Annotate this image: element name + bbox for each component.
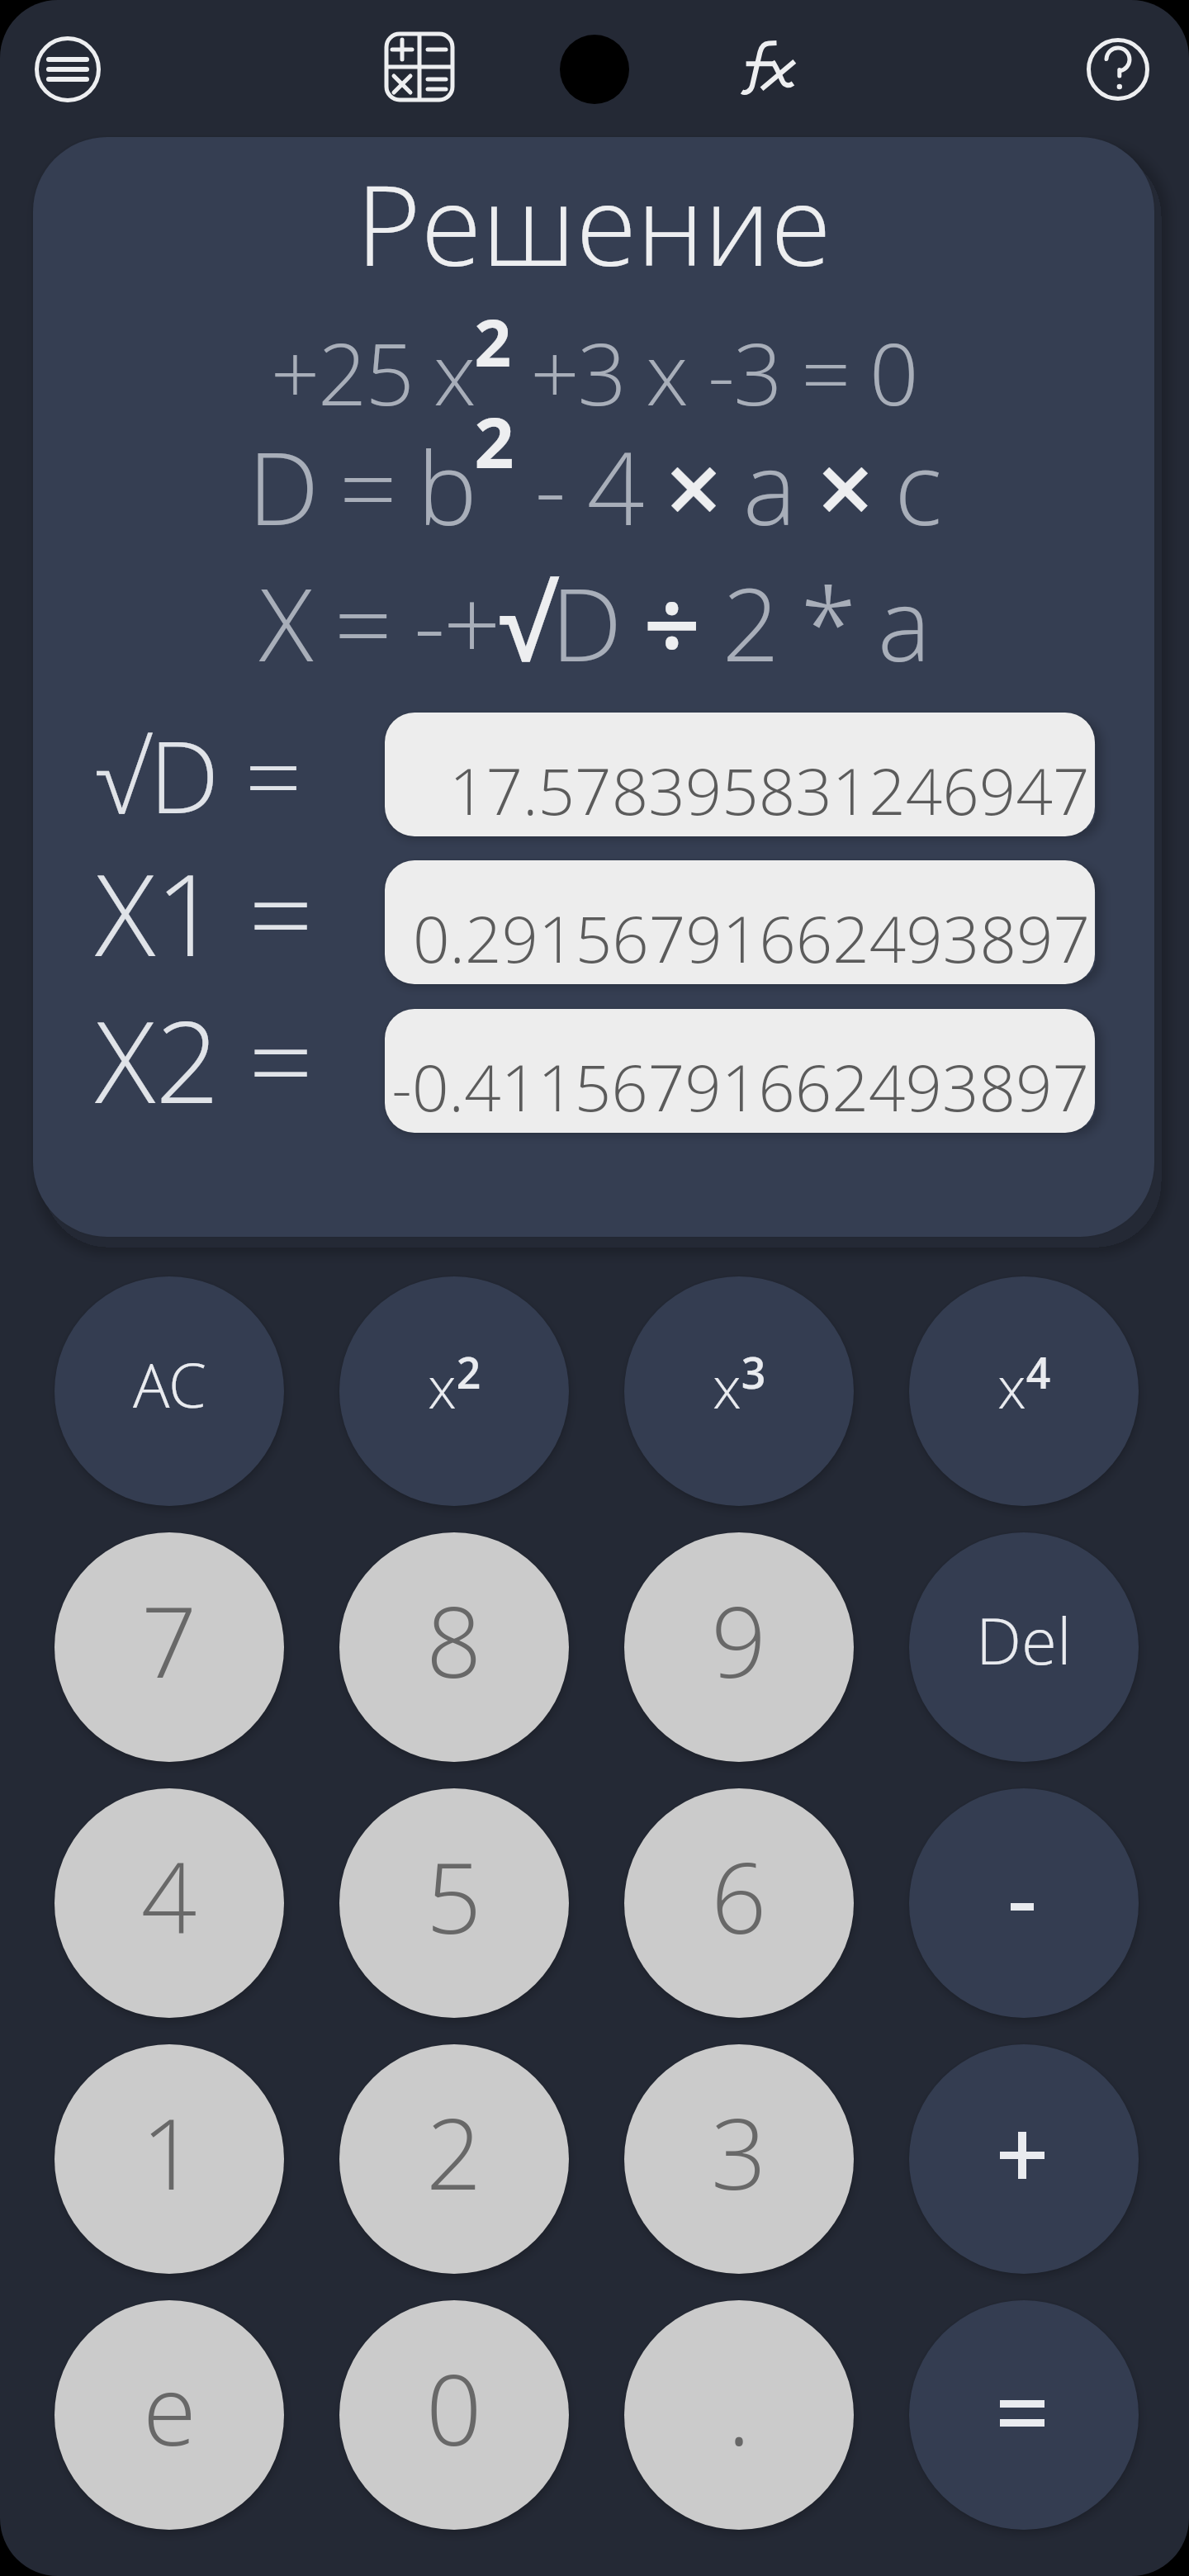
staticText: +25 x2 +3 x -3 = 0	[33, 298, 1154, 431]
staticText: 17.578395831246947	[449, 746, 1090, 834]
button[interactable]: 0	[339, 2300, 569, 2530]
button[interactable]: 5	[339, 1788, 569, 2018]
staticText: 2	[426, 2086, 482, 2218]
staticText: e	[143, 2342, 197, 2474]
button[interactable]	[1087, 38, 1149, 101]
staticText: 9	[711, 1574, 767, 1707]
button[interactable]: 0.29156791662493897	[385, 860, 1095, 984]
staticText: X2 =	[95, 983, 313, 1107]
staticText: 5	[426, 1830, 482, 1963]
button[interactable]: 3	[624, 2044, 854, 2274]
button[interactable]: -0.41156791662493897	[385, 1009, 1095, 1133]
button[interactable]	[909, 2044, 1139, 2274]
button[interactable]: e	[54, 2300, 284, 2530]
staticText: .	[727, 2342, 751, 2474]
button[interactable]: 4	[54, 1788, 284, 2018]
button[interactable]: 2	[339, 2044, 569, 2274]
staticText: 3	[711, 2086, 767, 2218]
staticText: 7	[141, 1574, 197, 1707]
button[interactable]: 9	[624, 1532, 854, 1762]
staticText: X1 =	[95, 836, 313, 960]
staticText: 4	[141, 1830, 197, 1963]
staticText: X = -+√D ÷ 2 * a	[33, 554, 1154, 691]
button[interactable]: x4	[909, 1276, 1139, 1506]
staticText: 8	[426, 1574, 482, 1707]
staticText: 0	[426, 2342, 482, 2474]
button[interactable]: 6	[624, 1788, 854, 2018]
button[interactable]	[35, 36, 101, 102]
button[interactable]	[909, 2300, 1139, 2530]
button[interactable]: x2	[339, 1276, 569, 1506]
button[interactable]: x3	[624, 1276, 854, 1506]
button[interactable]: AC	[54, 1276, 284, 1506]
staticText: 6	[711, 1830, 767, 1963]
button[interactable]: 1	[54, 2044, 284, 2274]
button[interactable]: 17.578395831246947	[385, 713, 1095, 836]
staticText: x4	[997, 1343, 1051, 1425]
button[interactable]: Del	[909, 1532, 1139, 1762]
button[interactable]: .	[624, 2300, 854, 2530]
staticText: Решение	[33, 148, 1154, 298]
staticText: x3	[713, 1343, 766, 1425]
button[interactable]: 7	[54, 1532, 284, 1762]
staticText: √D =	[95, 708, 302, 831]
staticText: 0.29156791662493897	[413, 894, 1090, 982]
button[interactable]	[727, 29, 817, 103]
staticText: x2	[428, 1343, 481, 1425]
staticText: D = b2 - 4 × a × c	[33, 394, 1154, 555]
staticText: AC	[133, 1342, 206, 1426]
staticText: Del	[976, 1596, 1072, 1683]
button[interactable]	[909, 1788, 1139, 2018]
button[interactable]: 8	[339, 1532, 569, 1762]
button[interactable]	[385, 32, 454, 102]
staticText: 1	[141, 2086, 197, 2218]
staticText: -0.41156791662493897	[391, 1043, 1090, 1130]
